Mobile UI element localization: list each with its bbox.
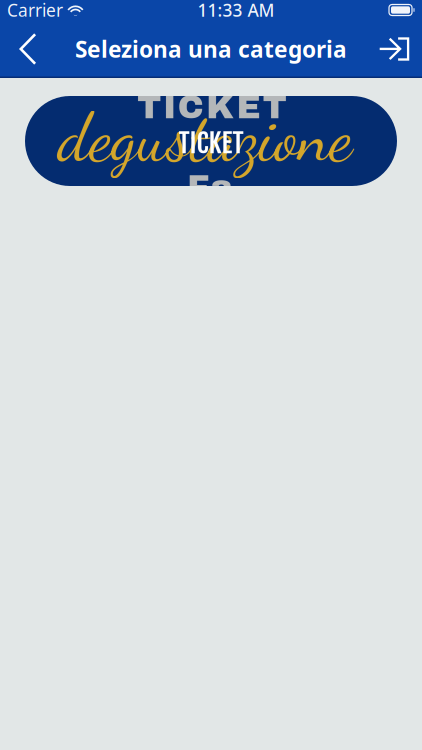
button[interactable]: Back [6,26,50,72]
staticText: TICKET [137,89,287,125]
staticText: degustazione [58,98,352,178]
staticText: Fa [187,169,233,205]
staticText: TICKET [178,126,243,160]
staticText: 11:33 AM [197,0,274,21]
staticText: Seleziona una categoria [75,34,347,64]
button[interactable]: Log out [372,26,416,72]
button[interactable]: TICKET [25,96,397,186]
staticText: Carrier [7,0,63,21]
